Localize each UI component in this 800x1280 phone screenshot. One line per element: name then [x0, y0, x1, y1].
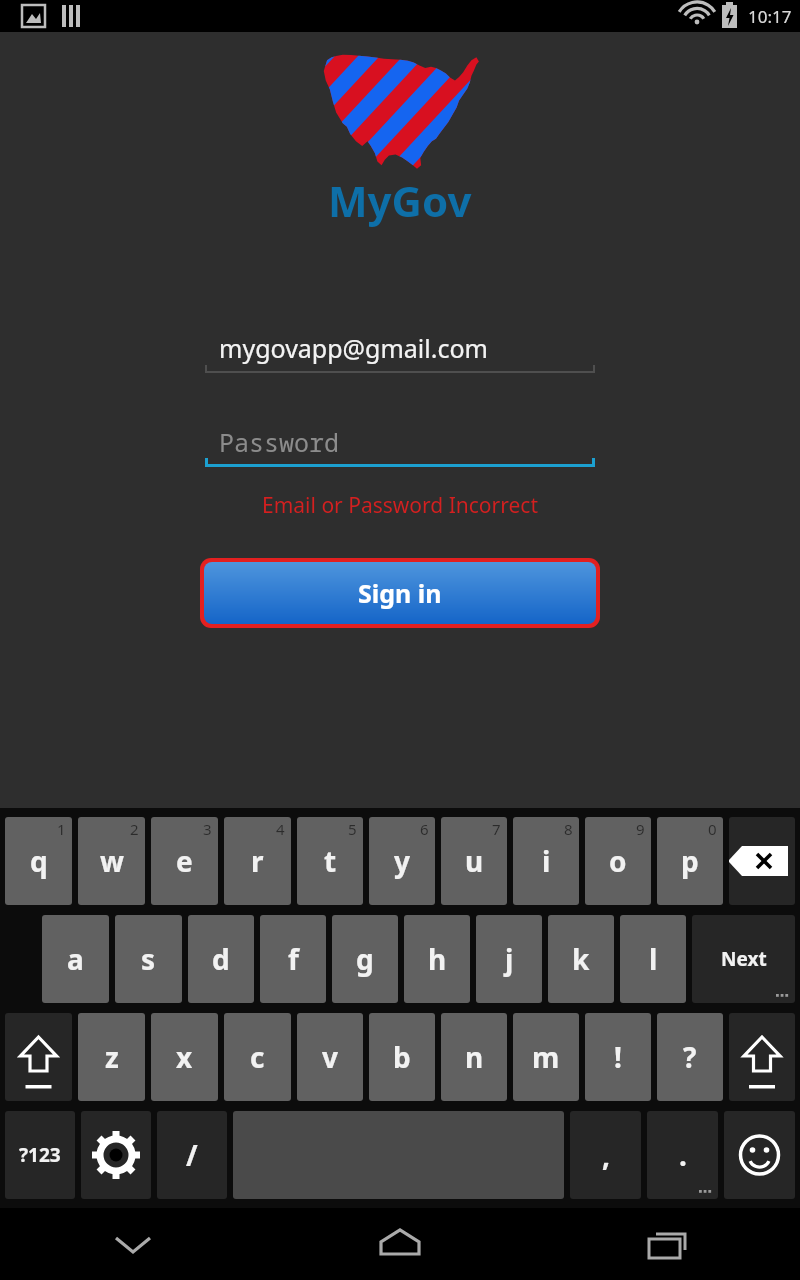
staticText: 4 [276, 819, 285, 839]
button[interactable]: Home [266, 1208, 533, 1280]
staticText: 3 [203, 819, 212, 839]
button[interactable]: Hide keyboard [0, 1208, 266, 1280]
staticText: . [679, 1136, 687, 1174]
staticText: 7 [492, 819, 501, 839]
button[interactable]: u [441, 817, 507, 905]
staticText: h [428, 940, 447, 978]
staticText: b [393, 1038, 411, 1076]
button[interactable]: s [115, 915, 182, 1003]
button[interactable]: Emoji [724, 1111, 795, 1199]
button[interactable]: t [297, 817, 363, 905]
button[interactable]: a [42, 915, 109, 1003]
staticText: i [542, 842, 551, 880]
staticText: ?123 [19, 1142, 61, 1168]
staticText: s [141, 940, 156, 978]
staticText: n [465, 1038, 484, 1076]
button[interactable]: ? [657, 1013, 723, 1101]
staticText: ? [683, 1038, 697, 1076]
staticText: g [356, 940, 374, 978]
button[interactable]: Password [205, 421, 595, 467]
button[interactable]: c [224, 1013, 291, 1101]
button[interactable]: Sign in [204, 562, 596, 624]
button[interactable]: . [647, 1111, 718, 1199]
staticText: Next [721, 946, 767, 972]
button[interactable]: i [513, 817, 579, 905]
staticText: d [212, 940, 230, 978]
button[interactable]: Backspace [729, 817, 795, 905]
button[interactable]: , [570, 1111, 641, 1199]
staticText: 0 [708, 819, 717, 839]
staticText: m [532, 1038, 560, 1076]
staticText: f [288, 940, 299, 978]
button[interactable]: Shift [729, 1013, 795, 1101]
staticText: MyGov [328, 172, 472, 229]
staticText: 8 [564, 819, 573, 839]
staticText: w [100, 842, 124, 880]
button[interactable]: x [151, 1013, 218, 1101]
button[interactable]: n [441, 1013, 507, 1101]
staticText: Sign in [358, 576, 442, 610]
button[interactable]: v [297, 1013, 363, 1101]
button[interactable]: h [404, 915, 470, 1003]
button[interactable]: l [620, 915, 686, 1003]
button[interactable]: m [513, 1013, 579, 1101]
button[interactable]: r [224, 817, 291, 905]
staticText: l [649, 940, 658, 978]
staticText: q [30, 842, 48, 880]
staticText: v [322, 1038, 338, 1076]
button[interactable]: Recent apps [533, 1208, 800, 1280]
button[interactable]: Shift [5, 1013, 72, 1101]
button[interactable]: z [78, 1013, 145, 1101]
button[interactable]: f [260, 915, 326, 1003]
staticText: p [681, 842, 699, 880]
button[interactable]: j [476, 915, 542, 1003]
button[interactable]: ?123 [5, 1111, 75, 1199]
staticText: 10:17 [748, 5, 792, 28]
button[interactable]: mygovapp@gmail.com [205, 327, 595, 373]
staticText: a [67, 940, 84, 978]
staticText: r [251, 842, 264, 880]
button[interactable]: / [157, 1111, 227, 1199]
staticText: u [465, 842, 484, 880]
staticText: k [572, 940, 590, 978]
staticText: , [602, 1136, 610, 1174]
button[interactable]: Settings [81, 1111, 151, 1199]
staticText: 6 [420, 819, 429, 839]
staticText: t [324, 842, 337, 880]
staticText: Email or Password Incorrect [262, 491, 538, 520]
button[interactable]: g [332, 915, 398, 1003]
button[interactable]: Next [692, 915, 795, 1003]
staticText: z [105, 1038, 119, 1076]
staticText: e [176, 842, 193, 880]
staticText: mygovapp@gmail.com [219, 331, 488, 365]
button[interactable]: e [151, 817, 218, 905]
button[interactable]: y [369, 817, 435, 905]
button[interactable]: ! [585, 1013, 651, 1101]
button[interactable]: k [548, 915, 614, 1003]
staticText: / [186, 1136, 198, 1174]
staticText: 5 [348, 819, 357, 839]
staticText: o [609, 842, 627, 880]
staticText: x [176, 1038, 193, 1076]
staticText: c [250, 1038, 265, 1076]
staticText: 1 [57, 819, 66, 839]
button[interactable]: d [188, 915, 254, 1003]
staticText: 2 [130, 819, 139, 839]
staticText: y [394, 842, 410, 880]
button[interactable]: q [5, 817, 72, 905]
staticText: ! [614, 1038, 622, 1076]
staticText: Password [219, 425, 340, 459]
staticText: 9 [636, 819, 645, 839]
button[interactable]: p [657, 817, 723, 905]
button[interactable]: o [585, 817, 651, 905]
button[interactable]: w [78, 817, 145, 905]
staticText: j [505, 940, 514, 978]
button[interactable]: b [369, 1013, 435, 1101]
